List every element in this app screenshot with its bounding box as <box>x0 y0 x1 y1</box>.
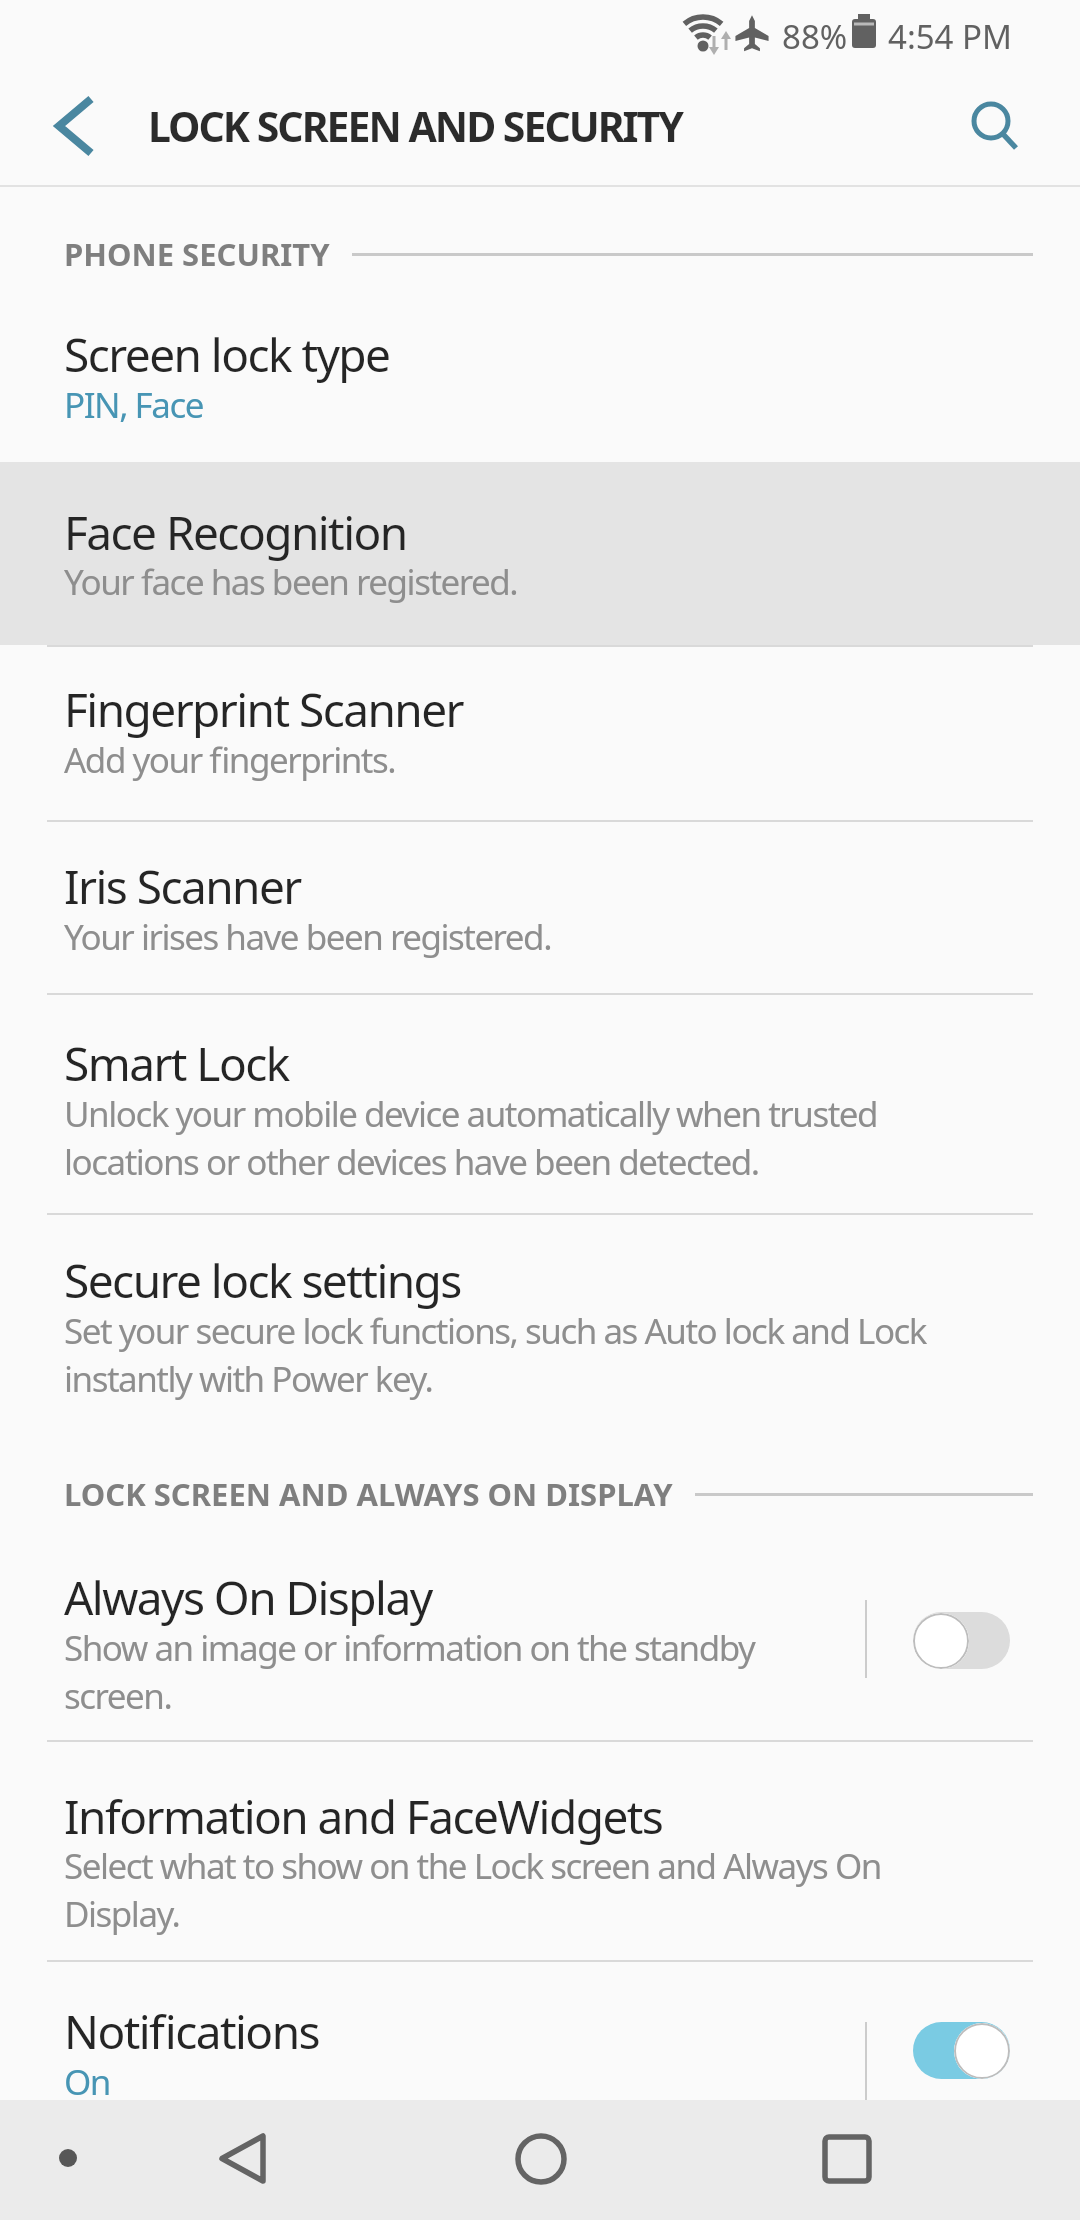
staticText: LOCK SCREEN AND SECURITY <box>148 98 682 154</box>
staticText: Screen lock type <box>64 323 390 386</box>
staticText: LOCK SCREEN AND ALWAYS ON DISPLAY <box>64 1473 673 1515</box>
staticText: screen. <box>64 1672 172 1720</box>
staticText: Fingerprint Scanner <box>64 678 464 741</box>
button[interactable] <box>720 2100 1080 2220</box>
button[interactable] <box>36 94 104 158</box>
button[interactable]: Information and FaceWidgets <box>0 1742 1080 1962</box>
button[interactable] <box>360 2100 720 2220</box>
button[interactable] <box>0 2100 360 2220</box>
staticText: Display. <box>64 1890 180 1938</box>
staticText: Always On Display <box>64 1566 432 1629</box>
staticText: Iris Scanner <box>64 855 301 918</box>
button[interactable]: Iris Scanner <box>0 820 1080 993</box>
staticText: instantly with Power key. <box>64 1355 433 1403</box>
staticText: 88% <box>782 14 848 59</box>
button[interactable]: Notifications <box>0 1962 1080 2100</box>
button[interactable]: Fingerprint Scanner <box>0 645 1080 820</box>
staticText: Secure lock settings <box>64 1249 461 1312</box>
staticText: Unlock your mobile device automatically … <box>64 1090 878 1138</box>
button[interactable] <box>913 1612 1010 1669</box>
staticText: Add your fingerprints. <box>64 736 396 784</box>
staticText: Show an image or information on the stan… <box>64 1624 755 1672</box>
staticText: Set your secure lock functions, such as … <box>64 1307 927 1355</box>
button[interactable]: Secure lock settings <box>0 1213 1080 1430</box>
staticText: 4:54 PM <box>888 14 1012 59</box>
staticText: Select what to show on the Lock screen a… <box>64 1842 881 1890</box>
staticText: Smart Lock <box>64 1032 289 1095</box>
button[interactable] <box>955 86 1039 170</box>
staticText: Face Recognition <box>64 501 407 564</box>
staticText: Your face has been registered. <box>64 558 518 606</box>
staticText: On <box>64 2058 110 2106</box>
staticText: Information and FaceWidgets <box>64 1785 663 1848</box>
staticText: PHONE SECURITY <box>64 233 330 275</box>
button[interactable]: Screen lock type <box>0 285 1080 462</box>
button[interactable] <box>913 2022 1010 2079</box>
staticText: PIN, Face <box>64 381 203 429</box>
button[interactable]: Smart Lock <box>0 993 1080 1213</box>
staticText: locations or other devices have been det… <box>64 1138 759 1186</box>
staticText: Your irises have been registered. <box>64 913 552 961</box>
staticText: Notifications <box>64 2000 320 2063</box>
button[interactable]: Face Recognition <box>0 462 1080 645</box>
button[interactable]: Always On Display <box>0 1540 1080 1742</box>
